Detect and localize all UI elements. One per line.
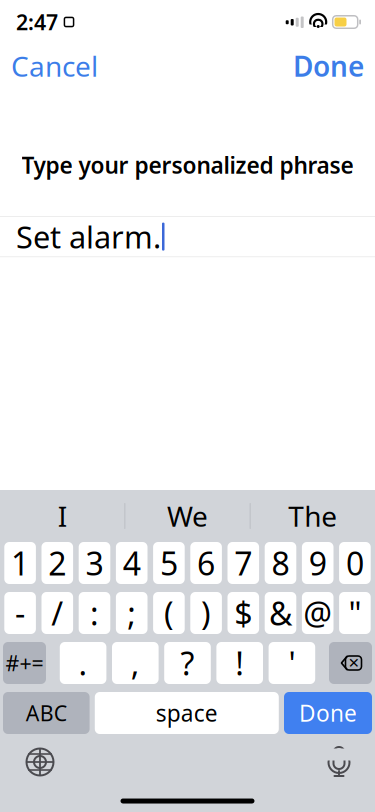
button[interactable]: 6 xyxy=(190,542,222,584)
button[interactable]: 4 xyxy=(116,542,147,584)
staticText: . xyxy=(79,642,88,684)
button[interactable]: & xyxy=(265,592,296,634)
staticText: ? xyxy=(180,642,194,684)
staticText: 6 xyxy=(197,542,215,584)
button[interactable]: #+= xyxy=(3,642,46,684)
button[interactable]: 1 xyxy=(4,542,36,584)
button[interactable]: The xyxy=(251,490,375,542)
button[interactable]: / xyxy=(41,592,73,634)
staticText: 3 xyxy=(85,542,103,584)
staticText: 2 xyxy=(48,542,66,584)
staticText: ! xyxy=(235,642,244,684)
button[interactable]: , xyxy=(112,642,159,684)
staticText: We xyxy=(167,497,208,535)
button[interactable]: 2 xyxy=(41,542,73,584)
staticText: - xyxy=(15,592,25,634)
button[interactable]: - xyxy=(4,592,36,634)
button[interactable]: ; xyxy=(116,592,147,634)
staticText: Type your personalized phrase xyxy=(21,150,353,180)
staticText: & xyxy=(269,592,292,634)
button[interactable]: @ xyxy=(302,592,333,634)
staticText: $ xyxy=(234,592,252,634)
button[interactable]: ) xyxy=(190,592,222,634)
staticText: ) xyxy=(201,592,211,634)
button[interactable]: Done xyxy=(281,38,375,94)
button[interactable]: Delete xyxy=(329,642,372,684)
button[interactable]: We xyxy=(125,490,250,542)
button[interactable]: 7 xyxy=(227,542,259,584)
staticText: ' xyxy=(288,642,295,684)
staticText: 8 xyxy=(271,542,289,584)
staticText: 0 xyxy=(346,542,364,584)
staticText: 7 xyxy=(234,542,252,584)
staticText: 4 xyxy=(123,542,141,584)
staticText: The xyxy=(288,497,337,535)
button[interactable]: 8 xyxy=(265,542,296,584)
staticText: Cancel xyxy=(11,47,98,85)
button[interactable]: 0 xyxy=(339,542,371,584)
button[interactable]: ABC xyxy=(3,692,90,734)
button[interactable]: " xyxy=(339,592,371,634)
staticText: Done xyxy=(293,47,364,85)
button[interactable]: Done xyxy=(284,692,372,734)
button[interactable]: $ xyxy=(227,592,259,634)
staticText: 9 xyxy=(309,542,327,584)
staticText: 2:47 xyxy=(16,8,58,36)
button[interactable]: Set alarm. xyxy=(0,217,375,257)
staticText: space xyxy=(156,698,218,728)
staticText: Done xyxy=(299,698,357,728)
staticText: #+= xyxy=(5,649,43,677)
staticText: Set alarm. xyxy=(16,216,161,257)
staticText: / xyxy=(51,592,63,634)
button[interactable]: I xyxy=(0,490,124,542)
button[interactable]: Next keyboard xyxy=(15,737,65,787)
staticText: ( xyxy=(164,592,174,634)
staticText: ; xyxy=(127,592,136,634)
staticText: " xyxy=(348,592,361,634)
staticText: 5 xyxy=(160,542,178,584)
staticText: : xyxy=(90,592,99,634)
staticText: I xyxy=(58,497,67,535)
button[interactable]: ? xyxy=(164,642,211,684)
button[interactable]: ( xyxy=(153,592,185,634)
button[interactable]: . xyxy=(60,642,106,684)
staticText: ABC xyxy=(26,699,67,727)
button[interactable]: Dictation xyxy=(318,737,360,787)
staticText: × xyxy=(348,650,359,674)
button[interactable]: ! xyxy=(216,642,263,684)
button[interactable]: ' xyxy=(269,642,315,684)
button[interactable]: 3 xyxy=(79,542,110,584)
button[interactable]: 9 xyxy=(302,542,333,584)
staticText: , xyxy=(131,642,140,684)
staticText: 1 xyxy=(11,542,29,584)
button[interactable]: Cancel xyxy=(0,38,110,94)
button[interactable]: space xyxy=(95,692,279,734)
staticText: @ xyxy=(303,592,332,634)
button[interactable]: 5 xyxy=(153,542,185,584)
button[interactable]: : xyxy=(79,592,110,634)
